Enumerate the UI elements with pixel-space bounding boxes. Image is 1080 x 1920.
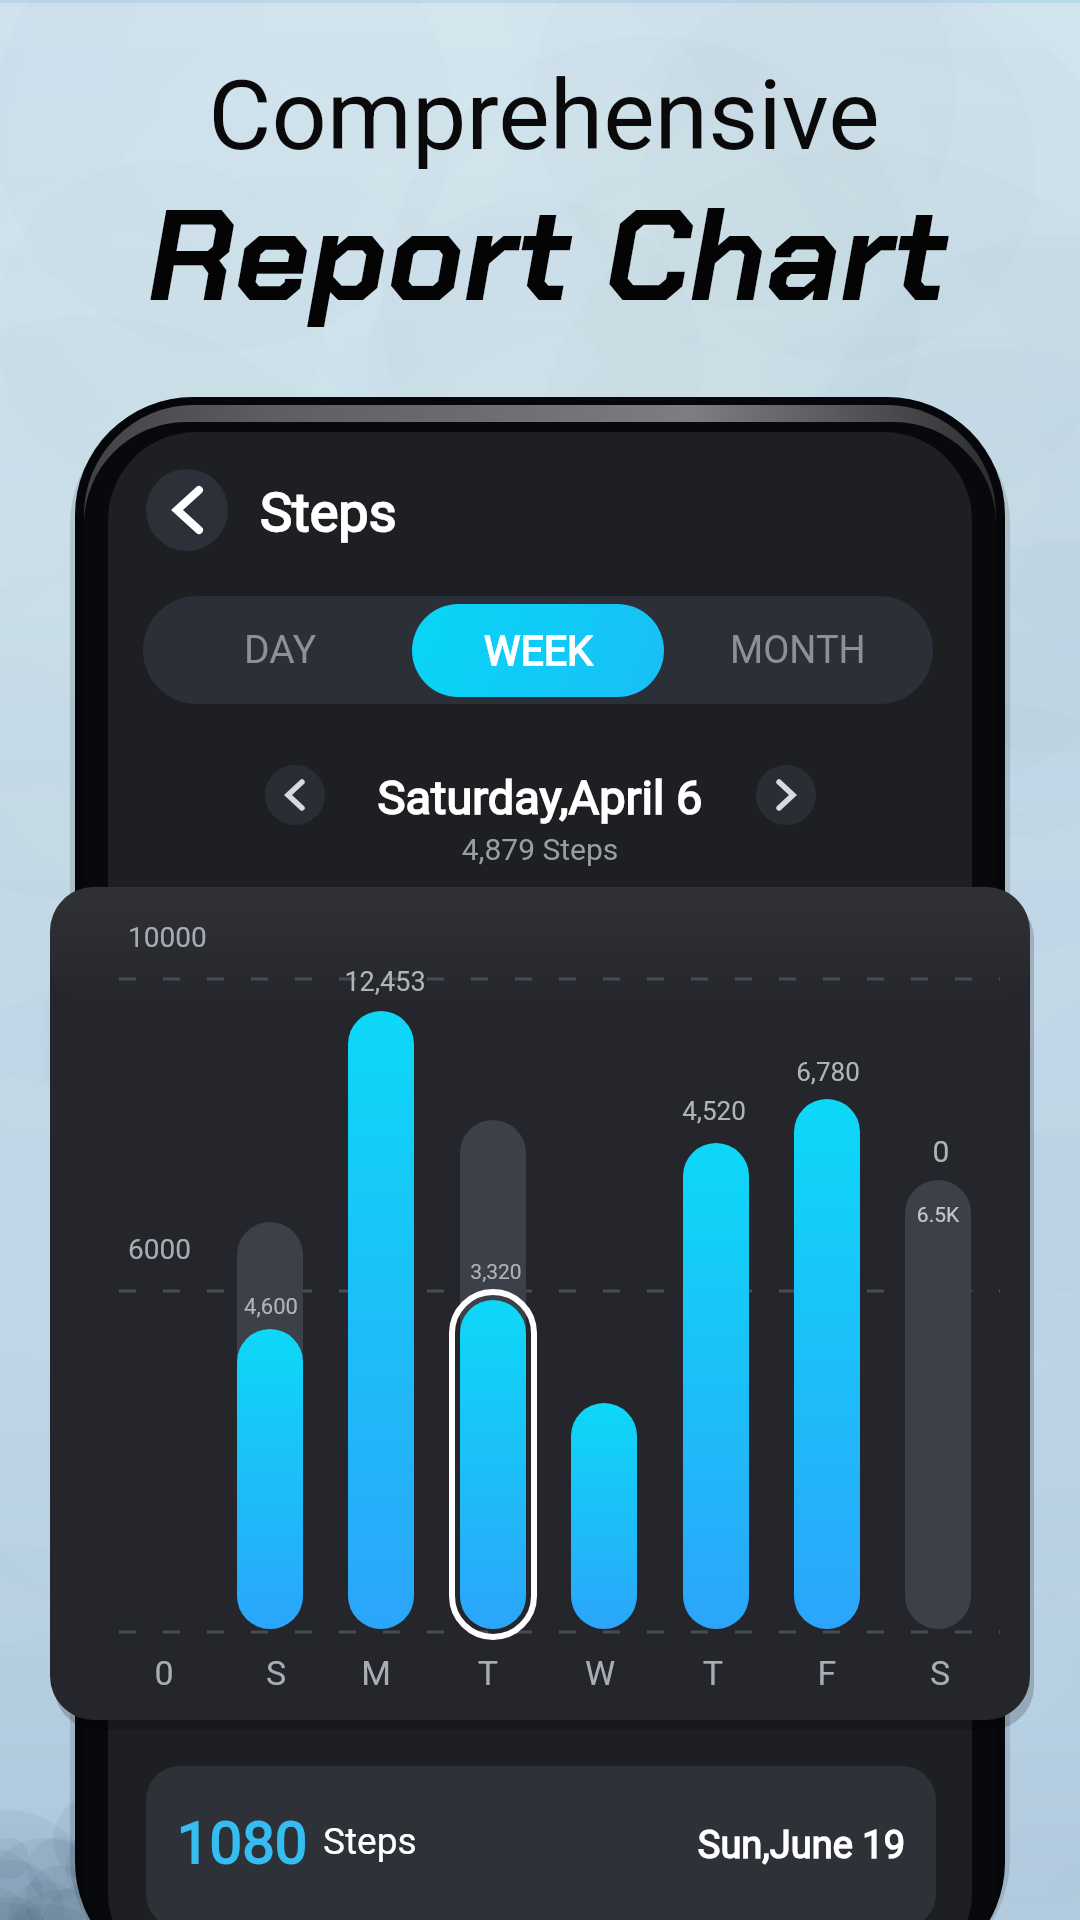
staticText: Steps [260, 481, 397, 544]
staticText: Comprehensive [4, 59, 1080, 214]
staticText: Sun,June 19 [570, 1823, 905, 1884]
staticText: F [717, 1653, 937, 1707]
staticText: 6.5K [828, 1203, 1048, 1237]
staticText: 3,320 [386, 1260, 606, 1294]
button[interactable]: DAY [151, 603, 410, 697]
staticText: S [166, 1653, 386, 1707]
staticText: 12,453 [275, 966, 495, 1009]
staticText: Report Chart [7, 172, 1080, 378]
staticText: 4,520 [604, 1096, 824, 1138]
button[interactable]: WEEK [412, 604, 664, 697]
staticText: 4,879 Steps [290, 832, 790, 880]
staticText: 6000 [128, 1233, 191, 1266]
staticText: T [603, 1653, 823, 1707]
button[interactable]: Next day [756, 765, 816, 825]
staticText: 4,600 [161, 1294, 381, 1329]
staticText: 10000 [128, 921, 207, 954]
button[interactable]: Back [146, 469, 228, 551]
staticText: 0 [831, 1134, 1051, 1182]
staticText: WEEK [484, 627, 593, 675]
staticText: W [490, 1653, 710, 1707]
staticText: 1080 [177, 1809, 308, 1877]
button[interactable]: 1080 [146, 1766, 936, 1920]
staticText: 6,780 [718, 1057, 938, 1099]
button[interactable]: MONTH [669, 603, 926, 697]
staticText: Steps [323, 1820, 417, 1863]
staticText: T [378, 1653, 598, 1707]
staticText: Saturday,April 6 [290, 770, 790, 845]
staticText: MONTH [730, 628, 866, 673]
staticText: M [266, 1653, 486, 1707]
staticText: DAY [244, 627, 317, 673]
staticText: 0 [54, 1653, 274, 1707]
staticText: S [830, 1653, 1050, 1707]
button[interactable]: Previous day [265, 765, 325, 825]
